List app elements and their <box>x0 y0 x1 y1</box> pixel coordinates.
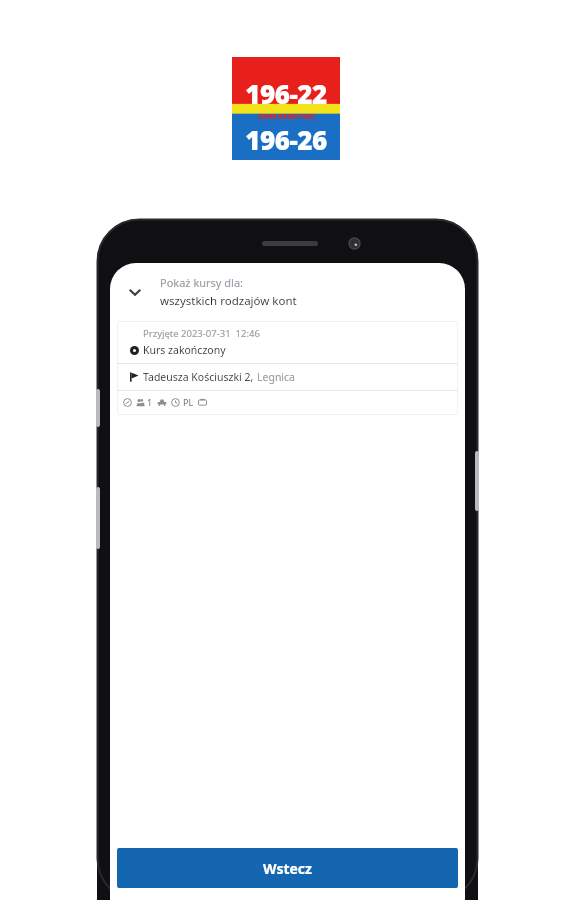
button[interactable]: Wstecz <box>117 848 458 888</box>
staticText: 196-22 <box>245 76 327 111</box>
staticText: SUPER RADIO TAXI <box>258 113 315 121</box>
staticText: Przyjęte 2023-07-31 12:46 <box>143 327 260 340</box>
staticText: wszystkich rodzajów kont <box>160 293 297 309</box>
staticText: 1 <box>147 396 153 408</box>
button[interactable]: 196-22 <box>232 57 340 160</box>
button[interactable]: Pokaż kursy dla: <box>110 271 465 315</box>
staticText: PL <box>183 396 194 408</box>
staticText: Kurs zakończony <box>143 343 226 357</box>
staticText: Wstecz <box>263 859 312 878</box>
staticText: 196-26 <box>245 122 327 157</box>
staticText: Legnica <box>257 370 296 384</box>
button[interactable]: Przyjęte 2023-07-31 12:46 <box>117 321 458 415</box>
staticText: Pokaż kursy dla: <box>160 275 244 290</box>
staticText: Tadeusza Kościuszki 2, <box>143 370 254 384</box>
